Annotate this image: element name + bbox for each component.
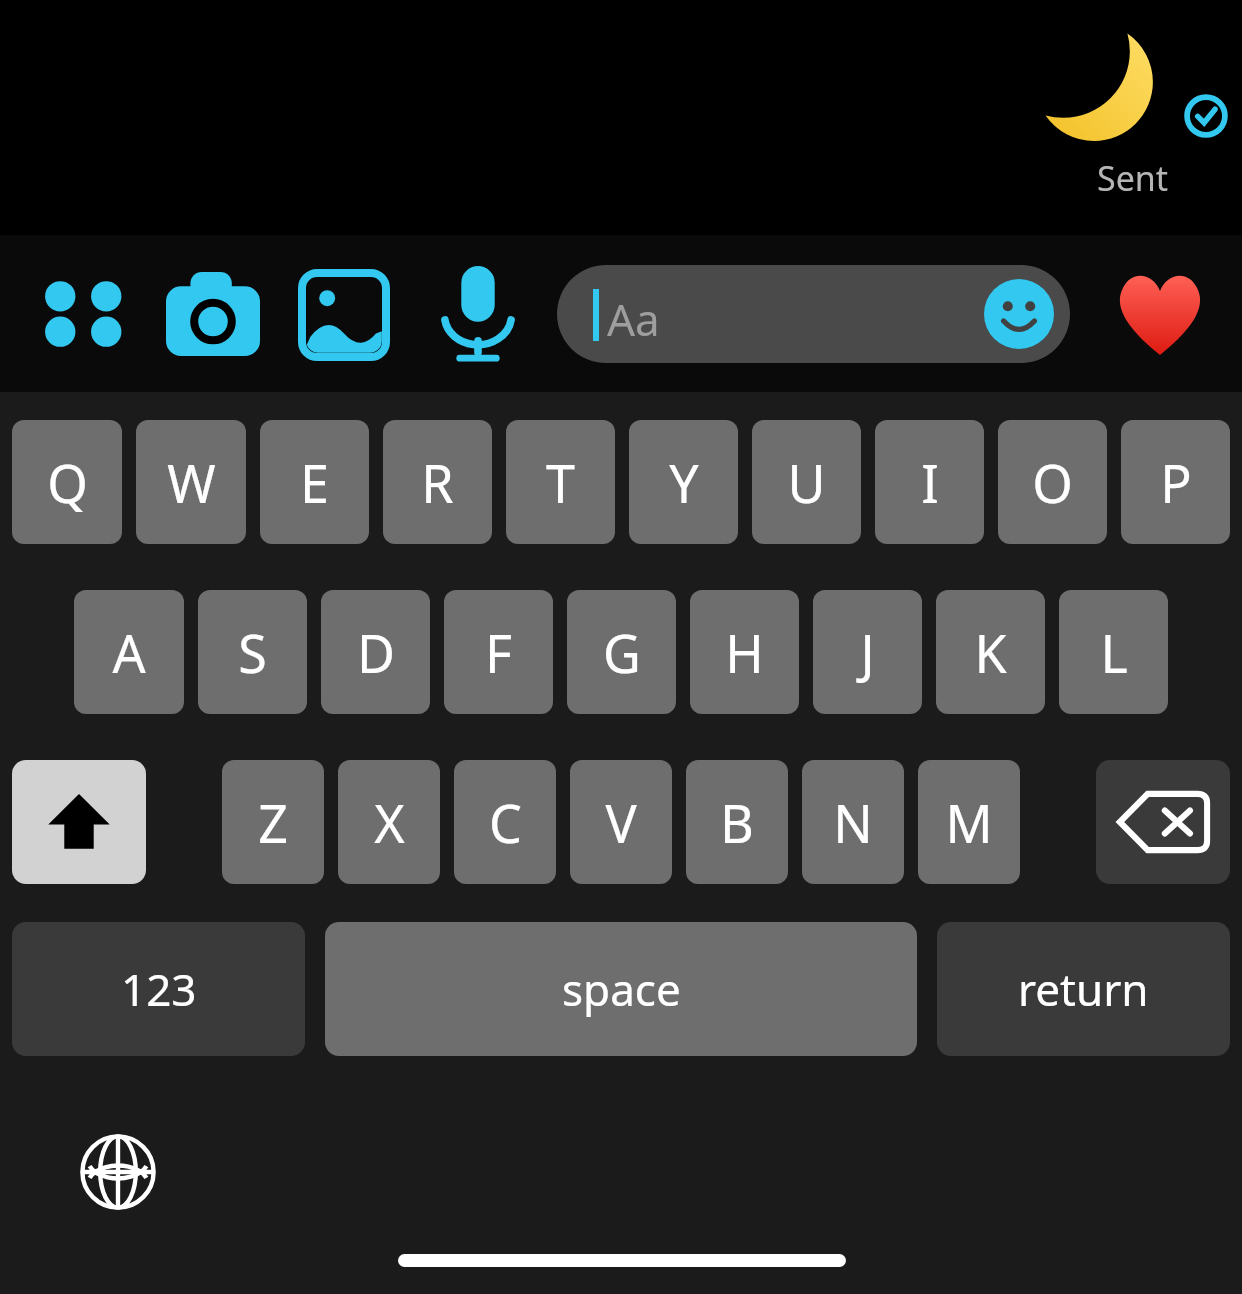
staticText: S bbox=[238, 617, 267, 688]
staticText: X bbox=[374, 787, 405, 858]
button[interactable]: E bbox=[260, 420, 369, 544]
staticText: D bbox=[357, 617, 395, 688]
staticText: F bbox=[485, 617, 512, 688]
staticText: Z bbox=[258, 787, 288, 858]
button[interactable]: F bbox=[444, 590, 553, 714]
staticText: space bbox=[562, 959, 681, 1019]
staticText: E bbox=[300, 447, 329, 518]
staticText: M bbox=[945, 787, 993, 858]
button[interactable]: K bbox=[936, 590, 1045, 714]
staticText: return bbox=[1018, 959, 1149, 1019]
staticText: B bbox=[720, 787, 754, 858]
button[interactable]: L bbox=[1059, 590, 1168, 714]
button[interactable]: Camera bbox=[166, 272, 260, 356]
button[interactable]: return bbox=[937, 922, 1230, 1056]
staticText: J bbox=[860, 617, 875, 688]
button[interactable]: Aa bbox=[557, 265, 1070, 363]
button[interactable]: R bbox=[383, 420, 492, 544]
button[interactable]: W bbox=[136, 420, 246, 544]
staticText: R bbox=[421, 447, 454, 518]
staticText: G bbox=[603, 617, 641, 688]
staticText: Sent bbox=[1097, 155, 1169, 201]
button[interactable]: Shift bbox=[12, 760, 146, 884]
button[interactable]: H bbox=[690, 590, 799, 714]
button[interactable]: Delete bbox=[1096, 760, 1230, 884]
button[interactable]: P bbox=[1121, 420, 1230, 544]
button[interactable]: U bbox=[752, 420, 861, 544]
button[interactable]: S bbox=[198, 590, 307, 714]
button[interactable]: O bbox=[998, 420, 1107, 544]
staticText: K bbox=[974, 617, 1007, 688]
staticText: Y bbox=[669, 447, 699, 518]
button[interactable]: Emoji bbox=[984, 279, 1054, 349]
button[interactable]: G bbox=[567, 590, 676, 714]
button[interactable]: B bbox=[686, 760, 788, 884]
button[interactable]: Audio message bbox=[440, 266, 516, 362]
button[interactable]: T bbox=[506, 420, 615, 544]
staticText: A bbox=[112, 617, 146, 688]
button[interactable]: A bbox=[74, 590, 184, 714]
button[interactable]: D bbox=[321, 590, 430, 714]
button[interactable]: Z bbox=[222, 760, 324, 884]
button[interactable]: V bbox=[570, 760, 672, 884]
button[interactable]: I bbox=[875, 420, 984, 544]
staticText: W bbox=[167, 447, 216, 518]
button[interactable]: Q bbox=[12, 420, 122, 544]
staticText: H bbox=[725, 617, 764, 688]
staticText: I bbox=[921, 447, 939, 518]
staticText: N bbox=[833, 787, 873, 858]
staticText: O bbox=[1032, 447, 1073, 518]
button[interactable]: X bbox=[338, 760, 440, 884]
button[interactable]: Change keyboard bbox=[78, 1132, 158, 1212]
button[interactable]: Send heart bbox=[1116, 273, 1204, 355]
button[interactable]: Photos bbox=[302, 273, 386, 357]
staticText: P bbox=[1160, 447, 1192, 518]
button[interactable]: C bbox=[454, 760, 556, 884]
button[interactable]: space bbox=[325, 922, 917, 1056]
staticText: C bbox=[489, 787, 522, 858]
button[interactable]: J bbox=[813, 590, 922, 714]
staticText: U bbox=[787, 447, 826, 518]
button[interactable]: Apps bbox=[40, 280, 132, 348]
staticText: Q bbox=[47, 447, 88, 518]
button[interactable]: N bbox=[802, 760, 904, 884]
staticText: Aa bbox=[607, 289, 660, 349]
staticText: L bbox=[1100, 617, 1128, 688]
button[interactable]: M bbox=[918, 760, 1020, 884]
staticText: 123 bbox=[121, 959, 197, 1019]
button[interactable]: 123 bbox=[12, 922, 305, 1056]
staticText: V bbox=[605, 787, 637, 858]
button[interactable]: Y bbox=[629, 420, 738, 544]
staticText: T bbox=[546, 447, 575, 518]
